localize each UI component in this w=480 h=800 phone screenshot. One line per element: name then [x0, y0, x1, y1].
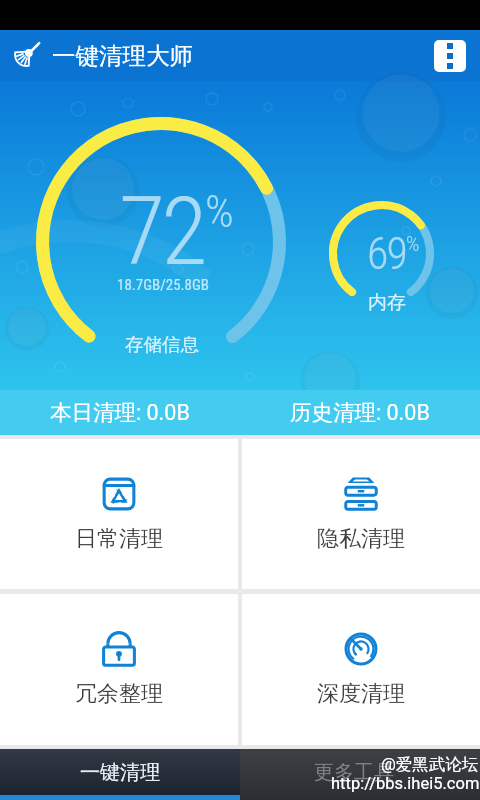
staticText: 隐私清理	[317, 525, 405, 553]
staticText: 69	[367, 228, 406, 280]
staticText: 历史清理: 0.0B	[290, 399, 430, 426]
button[interactable]: 深度清理	[242, 594, 480, 745]
button[interactable]: 冗余整理	[0, 594, 238, 745]
staticText: 72	[119, 176, 204, 287]
staticText: %	[406, 232, 420, 257]
staticText: 一键清理大师	[52, 41, 193, 71]
button[interactable]: 隐私清理	[242, 439, 480, 589]
staticText: 18.7GB/25.8GB	[117, 276, 210, 294]
staticText: 冗余整理	[75, 680, 163, 708]
staticText: 更多工具	[314, 760, 394, 785]
staticText: http://bbs.ihei5.com	[331, 774, 480, 793]
staticText: @爱黑武论坛	[381, 754, 479, 775]
button[interactable]: 日常清理	[0, 439, 238, 589]
staticText: %	[205, 185, 234, 238]
staticText: 本日清理: 0.0B	[50, 399, 190, 426]
staticText: 存储信息	[125, 333, 199, 356]
staticText: 深度清理	[317, 680, 405, 708]
button[interactable]: 更多工具	[240, 749, 480, 800]
button[interactable]: 一键清理	[0, 749, 240, 800]
staticText: 日常清理	[75, 525, 163, 553]
staticText: 一键清理	[80, 760, 160, 785]
staticText: 内存	[368, 291, 406, 315]
button[interactable]: More options	[434, 40, 466, 72]
